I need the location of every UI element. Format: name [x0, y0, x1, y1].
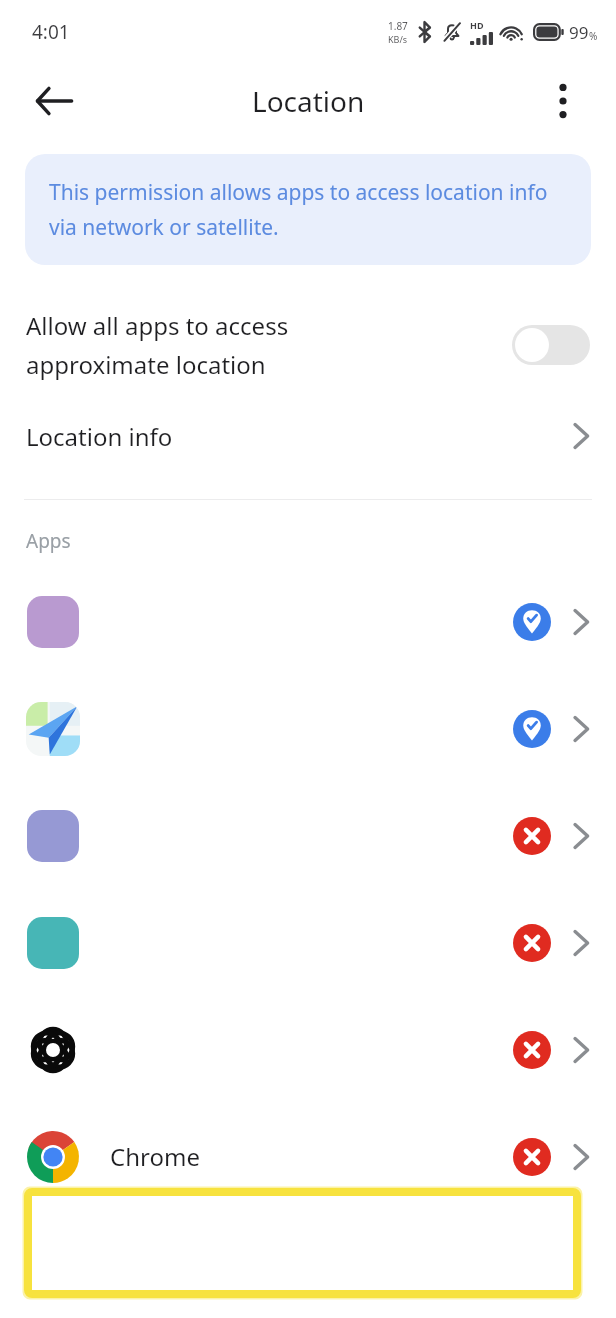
button[interactable]: Denied — [0, 889, 616, 996]
button[interactable]: Allowed — [0, 675, 616, 782]
staticText: Location info — [26, 420, 573, 453]
button[interactable]: Denied — [0, 996, 616, 1103]
staticText: This permission allows apps to access lo… — [49, 178, 567, 241]
staticText: Chrome — [110, 1140, 200, 1173]
staticText: % — [589, 29, 598, 43]
button[interactable]: Back — [30, 77, 78, 125]
button[interactable]: More options — [540, 78, 586, 124]
staticText: Apps — [26, 528, 71, 554]
button[interactable]: Location info — [0, 407, 616, 465]
button[interactable]: Allowed — [513, 603, 551, 641]
button[interactable]: Denied — [513, 817, 551, 855]
button[interactable]: Allowed — [0, 568, 616, 675]
staticText: HD — [470, 19, 484, 31]
staticText: KB/s — [388, 33, 408, 45]
staticText: 1.87 — [388, 19, 408, 33]
staticText: 4:01 — [32, 19, 70, 45]
staticText: Allow all apps to access approximate loc… — [26, 309, 496, 381]
staticText: Location — [252, 82, 365, 120]
button[interactable]: Denied — [513, 1138, 551, 1176]
staticText: 99 — [569, 21, 589, 44]
button[interactable]: Allow all apps toggle — [512, 325, 590, 365]
button[interactable]: Denied — [513, 1031, 551, 1069]
button[interactable]: Allow all apps to access approximate loc… — [0, 309, 616, 381]
button[interactable]: Denied — [0, 782, 616, 889]
button[interactable]: Denied — [513, 924, 551, 962]
button[interactable]: Allowed — [513, 710, 551, 748]
button[interactable]: Chrome — [0, 1103, 616, 1210]
